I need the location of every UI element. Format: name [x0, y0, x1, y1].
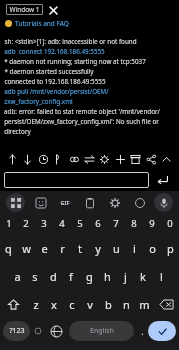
button[interactable]: Emoji — [30, 318, 45, 344]
button[interactable]: h — [98, 262, 116, 290]
button[interactable]: v — [81, 290, 99, 318]
button[interactable]: k — [134, 262, 152, 290]
button[interactable]: Period — [136, 318, 148, 344]
button[interactable]: Collapse — [160, 153, 173, 166]
button[interactable]: ?123 — [3, 321, 30, 341]
button[interactable]: Arrow up — [6, 153, 19, 166]
button[interactable]: 6 — [89, 213, 107, 234]
button[interactable]: Themes — [130, 193, 149, 212]
button[interactable]: p — [161, 234, 179, 262]
button[interactable]: x — [45, 290, 63, 318]
staticText: m — [139, 297, 150, 312]
staticText: 1 — [6, 217, 12, 230]
button[interactable]: Swap — [83, 153, 96, 166]
staticText: f — [69, 269, 73, 284]
button[interactable]: 5 — [71, 213, 89, 234]
staticText: c — [69, 297, 75, 312]
button[interactable]: 0 — [161, 213, 179, 234]
button[interactable]: i — [125, 234, 143, 262]
button[interactable]: w — [17, 234, 35, 262]
button[interactable]: GIF — [55, 193, 74, 212]
button[interactable]: 9 — [143, 213, 161, 234]
staticText: 8 — [131, 217, 137, 230]
button[interactable]: Done — [148, 321, 176, 341]
button[interactable]: Add — [114, 153, 127, 166]
button[interactable]: s — [26, 262, 44, 290]
button[interactable]: Enter — [149, 169, 175, 191]
button[interactable]: y — [89, 234, 107, 262]
staticText: b — [105, 297, 112, 312]
button[interactable]: Clipboard — [80, 193, 99, 212]
button[interactable]: c — [63, 290, 81, 318]
button[interactable]: l — [152, 262, 170, 290]
staticText: r — [60, 241, 65, 256]
button[interactable]: m — [135, 290, 153, 318]
button[interactable]: f — [62, 262, 80, 290]
staticText: t — [78, 241, 82, 256]
button[interactable]: Copy — [68, 153, 81, 166]
staticText: adb pull /mnt/vendor/persist/OEM/ — [4, 87, 109, 96]
staticText: 9 — [149, 217, 155, 230]
button[interactable]: Change language — [45, 318, 67, 344]
staticText: 7 — [113, 217, 119, 230]
staticText: n — [123, 297, 130, 312]
staticText: 4 — [59, 217, 65, 230]
staticText: h — [104, 269, 111, 284]
button[interactable]: t — [71, 234, 89, 262]
button[interactable]: d — [44, 262, 62, 290]
staticText: e — [41, 241, 48, 256]
button[interactable]: Settings — [105, 193, 124, 212]
button[interactable]: b — [99, 290, 117, 318]
staticText: adb connect 192.168.186.49:5555 — [4, 47, 105, 56]
button[interactable]: Arrow down — [21, 153, 34, 166]
staticText: sh: <stdin>[1]: adb: inaccessible or not… — [4, 37, 137, 46]
staticText: GIF — [60, 199, 70, 206]
button[interactable]: Backspace — [153, 290, 179, 318]
staticText: directory — [4, 127, 31, 136]
staticText: z — [33, 297, 39, 312]
button[interactable]: n — [117, 290, 135, 318]
button[interactable]: English — [69, 321, 134, 341]
button[interactable]: z — [27, 290, 45, 318]
button[interactable]: Shift — [0, 290, 27, 318]
staticText: i — [133, 241, 136, 256]
staticText: 0 — [167, 217, 173, 230]
button[interactable]: 7 — [107, 213, 125, 234]
button[interactable]: Settings2 — [98, 153, 111, 166]
button[interactable]: 8 — [125, 213, 143, 234]
button[interactable]: a — [8, 262, 26, 290]
button[interactable]: Paste — [52, 153, 65, 166]
button[interactable]: g — [80, 262, 98, 290]
button[interactable]: 4 — [53, 213, 71, 234]
button[interactable]: Archive — [129, 153, 142, 166]
button[interactable]: 1 — [0, 213, 17, 234]
button[interactable]: e — [35, 234, 53, 262]
button[interactable]: o — [143, 234, 161, 262]
button[interactable]: Window 1 — [9, 5, 40, 14]
button[interactable] — [4, 172, 149, 188]
button[interactable]: Share — [145, 153, 158, 166]
staticText: adb: error: failed to stat remote object… — [4, 107, 160, 116]
staticText: connected to 192.168.186.49:5555 — [4, 77, 106, 86]
staticText: g — [86, 269, 93, 284]
staticText: p — [167, 241, 174, 256]
staticText: x — [51, 297, 57, 312]
staticText: u — [113, 241, 120, 256]
button[interactable]: j — [116, 262, 134, 290]
button[interactable]: r — [53, 234, 71, 262]
button[interactable]: Voice input — [154, 193, 173, 212]
button[interactable]: Clock — [37, 153, 50, 166]
staticText: persist/OEM/zxw_factory_config.xml': No … — [4, 117, 159, 126]
button[interactable]: Keyboard switch — [6, 193, 25, 212]
button[interactable]: q — [0, 234, 17, 262]
staticText: a — [14, 269, 21, 284]
button[interactable]: 3 — [35, 213, 53, 234]
button[interactable]: u — [107, 234, 125, 262]
button[interactable]: Tutorials and FAQ — [5, 19, 179, 28]
staticText: . — [141, 325, 144, 337]
staticText: Tutorials and FAQ — [15, 19, 69, 28]
staticText: v — [87, 297, 93, 312]
button[interactable]: Close window — [48, 5, 58, 15]
button[interactable]: Emoji — [31, 193, 50, 212]
button[interactable]: 2 — [17, 213, 35, 234]
